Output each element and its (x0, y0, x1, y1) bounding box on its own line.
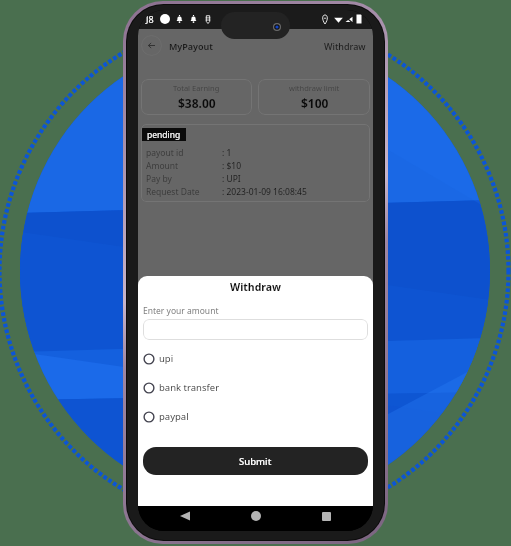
staticText: : 2023-01-09 16:08:45 (222, 186, 307, 198)
button[interactable]: upi (143, 344, 368, 373)
staticText: Submit (239, 455, 272, 468)
staticText: bank transfer (159, 381, 220, 394)
button[interactable]: Back (175, 506, 195, 526)
button[interactable]: Home (246, 506, 266, 526)
button[interactable]: paypal (143, 402, 368, 431)
staticText: payout id (146, 147, 184, 159)
staticText: Enter your amount (143, 305, 219, 317)
staticText: : 1 (222, 147, 232, 159)
button[interactable] (143, 319, 368, 340)
button[interactable]: Recents (316, 506, 336, 526)
staticText: : UPI (222, 173, 241, 185)
staticText: Withdraw (230, 280, 282, 294)
staticText: : $10 (222, 160, 242, 172)
staticText: J8 (146, 13, 154, 25)
staticText: Total Earning (173, 83, 220, 93)
staticText: $38.00 (178, 95, 216, 111)
staticText: paypal (159, 410, 189, 423)
staticText: Request Date (146, 186, 200, 198)
button[interactable]: Back (141, 35, 162, 56)
staticText: pending (147, 129, 181, 141)
staticText: MyPayout (169, 40, 213, 52)
button[interactable]: bank transfer (143, 373, 368, 402)
button[interactable]: Withdraw (324, 40, 366, 52)
button[interactable]: Total Earning (141, 79, 252, 115)
staticText: Pay by (146, 173, 172, 185)
staticText: Withdraw (324, 40, 366, 52)
staticText: $100 (301, 95, 329, 111)
button[interactable]: withdraw limit (258, 79, 370, 115)
staticText: upi (159, 352, 174, 365)
button[interactable]: Submit (143, 447, 368, 475)
staticText: withdraw limit (289, 83, 340, 93)
staticText: Amount (146, 160, 179, 172)
